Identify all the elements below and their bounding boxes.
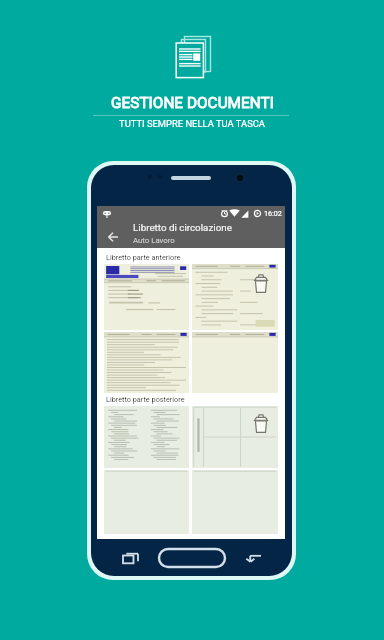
- staticText: 16:02: [264, 209, 282, 217]
- button[interactable]: [104, 406, 189, 468]
- button[interactable]: Back: [246, 551, 261, 566]
- staticText: Auto Lavoro: [133, 236, 175, 245]
- button[interactable]: Home: [159, 549, 225, 567]
- staticText: Libretto di circolazione: [133, 222, 232, 233]
- button[interactable]: Delete: [254, 274, 268, 293]
- staticText: TUTTI SEMPRE NELLA TUA TASCA: [119, 118, 265, 129]
- button[interactable]: Delete: [192, 264, 278, 330]
- staticText: Libretto parte posteriore: [106, 395, 185, 404]
- button[interactable]: [104, 264, 189, 330]
- staticText: Libretto parte anteriore: [106, 253, 181, 262]
- button[interactable]: [192, 332, 278, 393]
- button[interactable]: Delete: [254, 414, 268, 433]
- button[interactable]: Delete: [192, 406, 278, 468]
- staticText: GESTIONE DOCUMENTI: [111, 94, 274, 112]
- button[interactable]: Recent apps: [123, 551, 138, 566]
- button[interactable]: [104, 332, 189, 393]
- button[interactable]: Navigate up: [102, 226, 124, 248]
